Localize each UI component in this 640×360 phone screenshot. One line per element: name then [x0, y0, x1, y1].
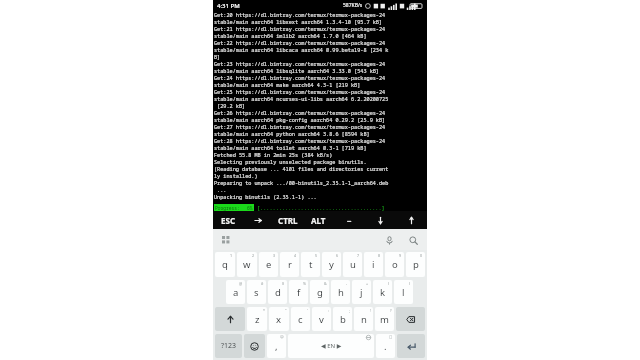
- staticText: 6%: [247, 205, 253, 211]
- staticText: [.......................................…: [257, 204, 385, 211]
- staticText: &: [324, 281, 327, 286]
- staticText: □: [389, 335, 393, 339]
- button[interactable]: ': [291, 307, 310, 331]
- button[interactable]: Backspace: [396, 307, 425, 331]
- button[interactable]: %: [289, 280, 308, 304]
- button[interactable]: ?123: [215, 334, 242, 358]
- button[interactable]: *: [247, 307, 267, 331]
- staticText: 8: [378, 253, 381, 258]
- button[interactable]: #: [247, 280, 266, 304]
- button[interactable]: 0: [406, 252, 425, 277]
- staticText: n: [361, 313, 367, 326]
- staticText: i: [372, 258, 375, 271]
- staticText: c: [298, 313, 303, 326]
- staticText: Progress:: [215, 205, 240, 211]
- staticText: b: [340, 313, 346, 326]
- button[interactable]: 6: [322, 252, 341, 277]
- button[interactable]: &: [310, 280, 329, 304]
- button[interactable]: 3: [259, 252, 278, 277]
- button[interactable]: -: [331, 280, 350, 304]
- staticText: ?: [390, 308, 392, 313]
- staticText: Get:24 https://dl.bintray.com/termux/ter…: [214, 74, 386, 81]
- button[interactable]: ;: [333, 307, 352, 331]
- staticText: Unpacking binutils (2.35.1-1) ...: [214, 193, 317, 200]
- staticText: stable/main aarch64 libcaca aarch64 0.99…: [214, 46, 389, 53]
- button[interactable]: 5: [301, 252, 320, 277]
- staticText: Selecting previously unselected package …: [214, 158, 367, 165]
- staticText: y: [329, 258, 334, 271]
- staticText: l: [402, 286, 405, 299]
- staticText: stable/main aarch64 libsqlite aarch64 3.…: [214, 67, 379, 74]
- staticText: j: [360, 286, 363, 299]
- staticText: x: [276, 313, 282, 326]
- staticText: m: [380, 313, 389, 326]
- button[interactable]: @: [226, 280, 245, 304]
- staticText: t: [309, 258, 313, 271]
- button[interactable]: ": [269, 307, 289, 331]
- button[interactable]: !: [354, 307, 373, 331]
- staticText: Fetched 55.8 MB in 2min 25s (384 kB/s): [214, 151, 333, 158]
- button[interactable]: Clipboard: [219, 233, 233, 247]
- staticText: ◀ EN ▶: [321, 342, 342, 350]
- staticText: v: [319, 313, 324, 326]
- staticText: Get:26 https://dl.bintray.com/termux/ter…: [214, 109, 386, 116]
- staticText: :: [328, 308, 329, 313]
- staticText: a: [233, 286, 239, 299]
- staticText: q: [222, 258, 228, 271]
- button[interactable]: 2: [237, 252, 257, 277]
- button[interactable]: 9: [385, 252, 404, 277]
- button[interactable]: 8: [364, 252, 383, 277]
- button[interactable]: Tab: [243, 211, 273, 229]
- button[interactable]: CTRL: [273, 211, 303, 229]
- staticText: stable/main aarch64 make aarch64 4.3-1 […: [214, 81, 361, 88]
- staticText: 7: [357, 253, 360, 258]
- button[interactable]: ALT: [303, 211, 334, 229]
- button[interactable]: Shift: [215, 307, 245, 331]
- staticText: ☺: [280, 335, 284, 339]
- staticText: d: [275, 286, 281, 299]
- staticText: @: [239, 281, 243, 286]
- button[interactable]: ): [394, 280, 413, 304]
- staticText: ): [409, 281, 411, 286]
- button[interactable]: −: [334, 211, 365, 229]
- button[interactable]: □: [376, 334, 395, 358]
- staticText: 587KB/s: [343, 2, 363, 9]
- button[interactable]: Enter: [397, 334, 425, 358]
- button[interactable]: ☺: [267, 334, 286, 358]
- button[interactable]: Space: [288, 334, 374, 358]
- staticText: 1: [230, 253, 233, 258]
- button[interactable]: Arrow up: [396, 211, 427, 229]
- staticText: w: [243, 258, 251, 271]
- button[interactable]: Emoji: [244, 334, 265, 358]
- staticText: stable/main aarch64 pkg-config aarch64 0…: [214, 116, 386, 123]
- button[interactable]: +: [352, 280, 371, 304]
- staticText: ": [285, 308, 287, 313]
- staticText: h: [338, 286, 344, 299]
- staticText: Get:20 https://dl.bintray.com/termux/ter…: [214, 11, 386, 18]
- staticText: ?123: [221, 341, 237, 351]
- button[interactable]: 1: [215, 252, 235, 277]
- button[interactable]: ESC: [213, 211, 243, 229]
- staticText: Get:21 https://dl.bintray.com/termux/ter…: [214, 25, 386, 32]
- staticText: *: [263, 308, 265, 313]
- staticText: Get:23 https://dl.bintray.com/termux/ter…: [214, 60, 386, 67]
- button[interactable]: 4: [280, 252, 299, 277]
- staticText: k: [380, 286, 386, 299]
- button[interactable]: (: [373, 280, 392, 304]
- staticText: B]: [214, 53, 221, 60]
- staticText: !: [370, 308, 371, 313]
- staticText: 9: [399, 253, 402, 258]
- staticText: 2: [252, 253, 255, 258]
- staticText: r: [288, 258, 292, 271]
- button[interactable]: 7: [343, 252, 362, 277]
- button[interactable]: Search: [405, 232, 421, 248]
- staticText: f: [297, 286, 301, 299]
- button[interactable]: ?: [375, 307, 394, 331]
- button[interactable]: :: [312, 307, 331, 331]
- button[interactable]: Voice input: [381, 232, 397, 248]
- staticText: stable/main aarch64 python aarch64 3.8.6…: [214, 130, 370, 137]
- button[interactable]: Arrow down: [365, 211, 396, 229]
- staticText: s: [254, 286, 259, 299]
- button[interactable]: $: [268, 280, 287, 304]
- staticText: #: [261, 281, 264, 286]
